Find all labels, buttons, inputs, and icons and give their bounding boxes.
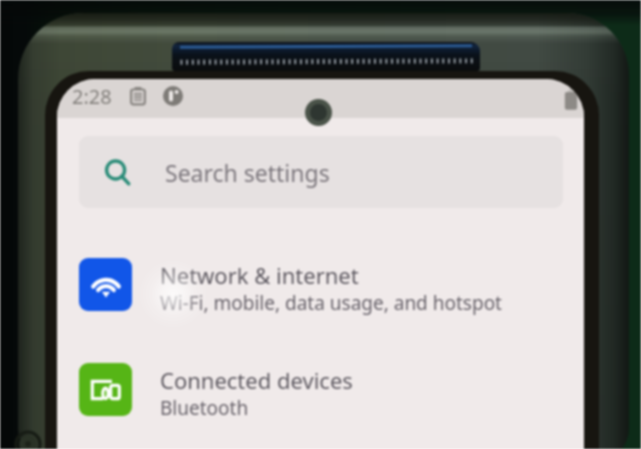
button[interactable]: Search settings [79, 136, 563, 208]
staticText: 2:28 [72, 83, 112, 110]
staticText: Network & internet [160, 260, 359, 290]
button[interactable]: Connected devices [57, 351, 584, 427]
staticText: Search settings [165, 157, 330, 188]
staticText: Connected devices [160, 365, 353, 395]
staticText: Wi-Fi, mobile, data usage, and hotspot [160, 290, 502, 316]
other: Case button [13, 429, 43, 449]
button[interactable]: Network & internet [57, 246, 584, 322]
staticText: Bluetooth [160, 395, 249, 421]
